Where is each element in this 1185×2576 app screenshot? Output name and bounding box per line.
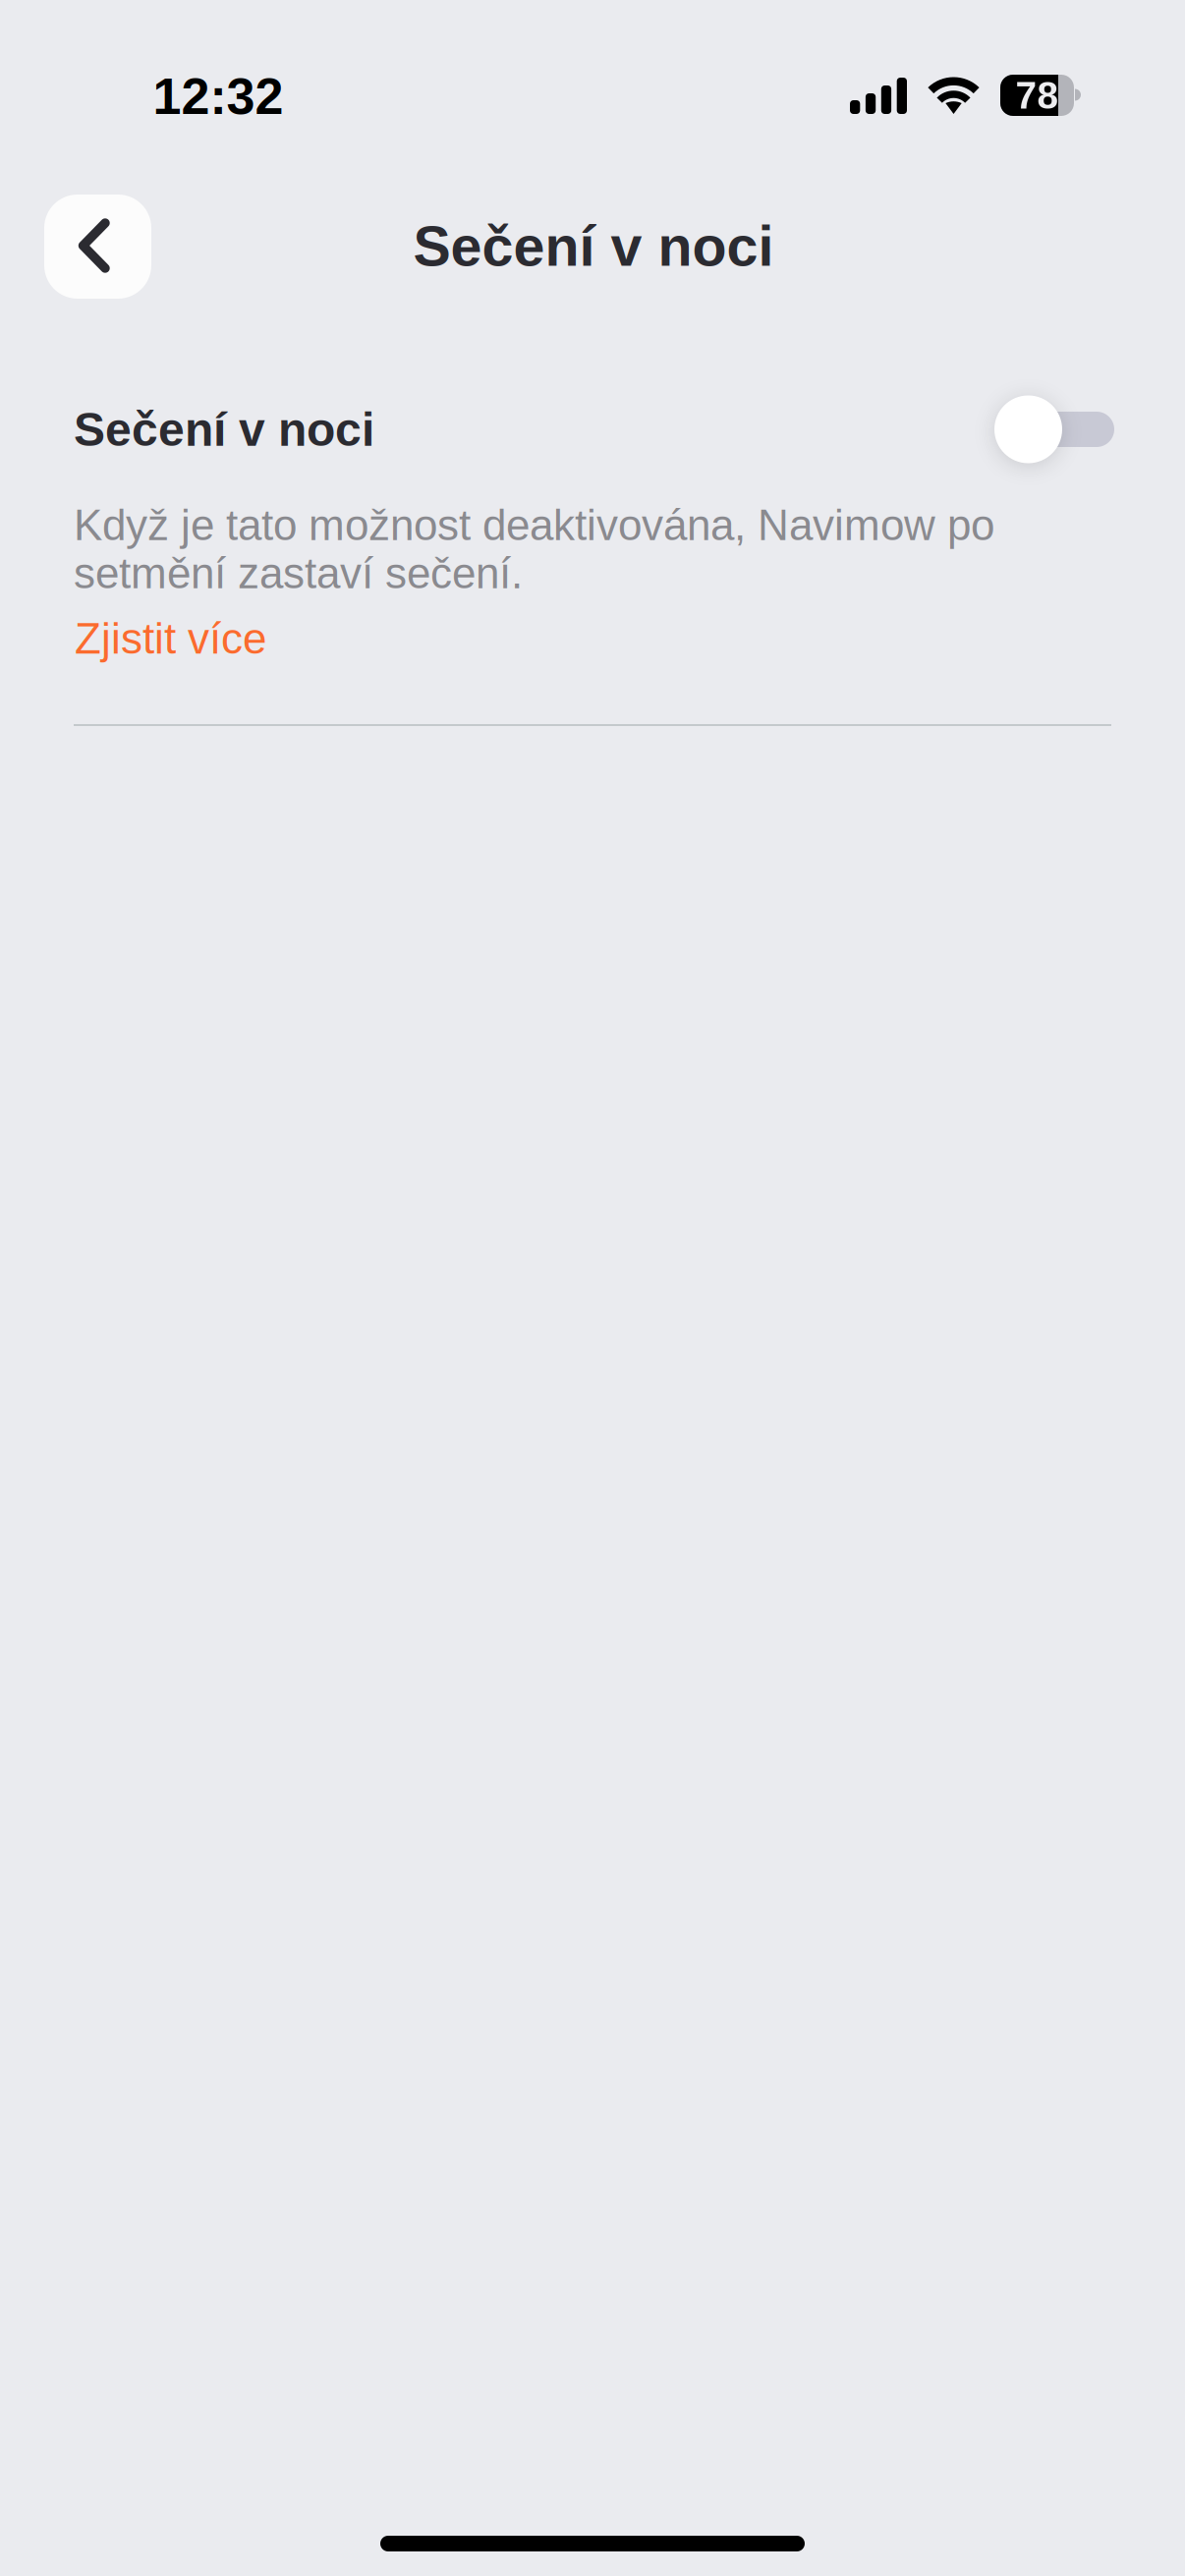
staticText: Sečení v noci [74,403,374,456]
button[interactable]: Sečení v noci [0,378,1185,480]
button[interactable]: Zjistit více [75,613,271,664]
staticText: Sečení v noci [413,215,774,278]
button[interactable]: Back [44,195,151,299]
staticText: 12:32 [153,68,283,125]
staticText: Když je tato možnost deaktivována, Navim… [74,501,994,597]
staticText: Zjistit více [75,614,266,663]
staticText: 78 [1016,74,1059,117]
